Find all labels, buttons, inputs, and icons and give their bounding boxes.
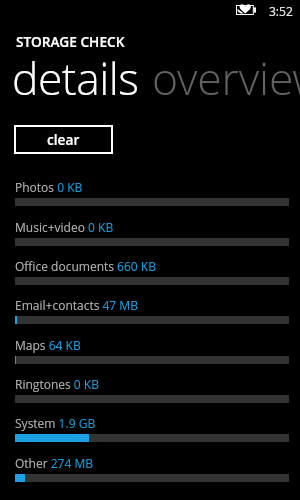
button[interactable]: Ringtones 0 KB bbox=[15, 371, 289, 403]
button[interactable]: Music+video 0 KB bbox=[15, 214, 289, 246]
staticText: Photos 0 KB bbox=[15, 179, 83, 195]
staticText: clear bbox=[47, 130, 80, 149]
button[interactable]: Other 274 MB bbox=[15, 450, 289, 482]
button[interactable]: Office documents 660 KB bbox=[15, 253, 289, 285]
staticText: Other 274 MB bbox=[15, 455, 94, 471]
staticText: Music+video 0 KB bbox=[15, 219, 114, 235]
staticText: Office documents 660 KB bbox=[15, 258, 156, 274]
button[interactable]: System 1.9 GB bbox=[15, 410, 289, 442]
other: Battery saver bbox=[236, 5, 256, 15]
button[interactable]: Photos 0 KB bbox=[15, 174, 289, 206]
staticText: details bbox=[12, 47, 139, 108]
button[interactable]: Maps 64 KB bbox=[15, 332, 289, 364]
staticText: STORAGE CHECK bbox=[16, 32, 125, 51]
staticText: Maps 64 KB bbox=[15, 337, 81, 353]
button[interactable]: Email+contacts 47 MB bbox=[15, 292, 289, 324]
staticText: overview bbox=[152, 47, 300, 108]
staticText: 3:52 bbox=[269, 3, 293, 19]
button[interactable]: clear bbox=[14, 125, 113, 154]
staticText: System 1.9 GB bbox=[15, 415, 96, 431]
staticText: Ringtones 0 KB bbox=[15, 376, 99, 392]
staticText: Email+contacts 47 MB bbox=[15, 297, 138, 313]
